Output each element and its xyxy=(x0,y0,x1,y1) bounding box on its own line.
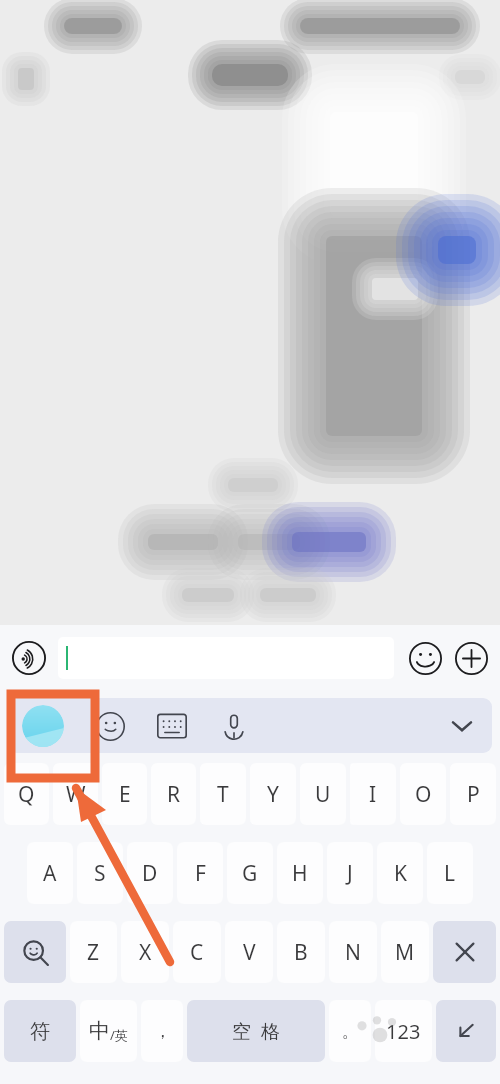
button[interactable]: Q xyxy=(4,763,49,825)
button[interactable]: U xyxy=(300,763,346,825)
staticText: D xyxy=(142,859,158,888)
button[interactable]: S xyxy=(77,842,123,904)
staticText: E xyxy=(119,780,131,809)
staticText: S xyxy=(94,859,106,888)
button[interactable]: Backspace xyxy=(433,921,496,983)
staticText: Y xyxy=(267,780,279,809)
button[interactable]: Collapse toolbar xyxy=(442,706,482,746)
staticText: Z xyxy=(87,938,100,967)
staticText: M xyxy=(395,938,415,967)
staticText: J xyxy=(347,859,353,888)
staticText: H xyxy=(292,859,308,888)
button[interactable] xyxy=(58,637,394,679)
button[interactable]: V xyxy=(225,921,273,983)
button[interactable]: T xyxy=(200,763,246,825)
staticText: V xyxy=(243,938,256,967)
staticText: Q xyxy=(18,780,35,809)
button[interactable]: Voice input xyxy=(10,639,48,677)
button[interactable]: W xyxy=(53,763,98,825)
button[interactable]: J xyxy=(327,842,373,904)
button[interactable]: W xyxy=(53,763,73,825)
staticText: C xyxy=(190,938,204,967)
button[interactable]: Emoji search xyxy=(4,921,66,983)
button[interactable]: F xyxy=(177,842,223,904)
button[interactable]: Q xyxy=(4,763,21,825)
button[interactable]: Voice typing xyxy=(216,708,252,744)
button[interactable]: A xyxy=(27,842,73,904)
button[interactable]: Z xyxy=(70,921,117,983)
button[interactable]: H xyxy=(277,842,323,904)
button[interactable]: Enter xyxy=(436,1000,496,1062)
staticText: I xyxy=(369,780,377,809)
staticText: O xyxy=(415,780,432,809)
button[interactable]: ， xyxy=(141,1000,183,1062)
staticText: /英 xyxy=(110,1026,128,1044)
staticText: 空 格 xyxy=(232,1018,280,1044)
button[interactable]: O xyxy=(400,763,417,825)
button[interactable]: 中 xyxy=(80,1000,137,1062)
button[interactable]: O xyxy=(400,763,446,825)
button[interactable]: I xyxy=(350,763,396,825)
staticText: O xyxy=(400,780,417,809)
button[interactable]: D xyxy=(127,842,173,904)
staticText: Q xyxy=(4,780,21,809)
button[interactable]: Emoji xyxy=(406,639,444,677)
button[interactable]: R xyxy=(151,763,196,825)
staticText: X xyxy=(139,938,152,967)
staticText: 。 xyxy=(342,1021,359,1042)
staticText: R xyxy=(167,780,181,809)
staticText: 符 xyxy=(30,1019,50,1044)
staticText: G xyxy=(242,859,258,888)
staticText: ， xyxy=(154,1021,171,1042)
staticText: N xyxy=(345,938,361,967)
button[interactable]: Y xyxy=(250,763,296,825)
button[interactable]: 123 xyxy=(375,1000,432,1062)
staticText: A xyxy=(43,859,57,888)
button[interactable]: N xyxy=(329,921,377,983)
button[interactable]: K xyxy=(377,842,423,904)
button[interactable]: G xyxy=(227,842,273,904)
button[interactable]: Keyboard layout xyxy=(154,708,190,744)
button[interactable]: 。 xyxy=(329,1000,371,1062)
staticText: E xyxy=(102,780,114,809)
button[interactable]: Input method avatar xyxy=(22,705,64,747)
button[interactable]: C xyxy=(173,921,221,983)
button[interactable]: 空 格 xyxy=(187,1000,325,1062)
staticText: F xyxy=(195,859,206,888)
staticText: U xyxy=(315,780,331,809)
staticText: L xyxy=(444,859,456,888)
staticText: W xyxy=(53,780,73,809)
staticText: P xyxy=(467,780,480,809)
staticText: B xyxy=(294,938,308,967)
button[interactable]: L xyxy=(427,842,473,904)
button[interactable]: P xyxy=(450,763,496,825)
staticText: W xyxy=(66,780,86,809)
button[interactable]: M xyxy=(381,921,429,983)
staticText: 中 xyxy=(89,1018,110,1044)
staticText: K xyxy=(394,859,407,888)
button[interactable]: E xyxy=(102,763,114,825)
button[interactable]: E xyxy=(102,763,147,825)
button[interactable]: Stickers xyxy=(92,708,128,744)
button[interactable]: More options xyxy=(452,639,490,677)
staticText: T xyxy=(217,780,229,809)
button[interactable]: X xyxy=(121,921,169,983)
button[interactable]: 符 xyxy=(4,1000,76,1062)
button[interactable]: B xyxy=(277,921,325,983)
staticText: 123 xyxy=(386,1018,421,1045)
